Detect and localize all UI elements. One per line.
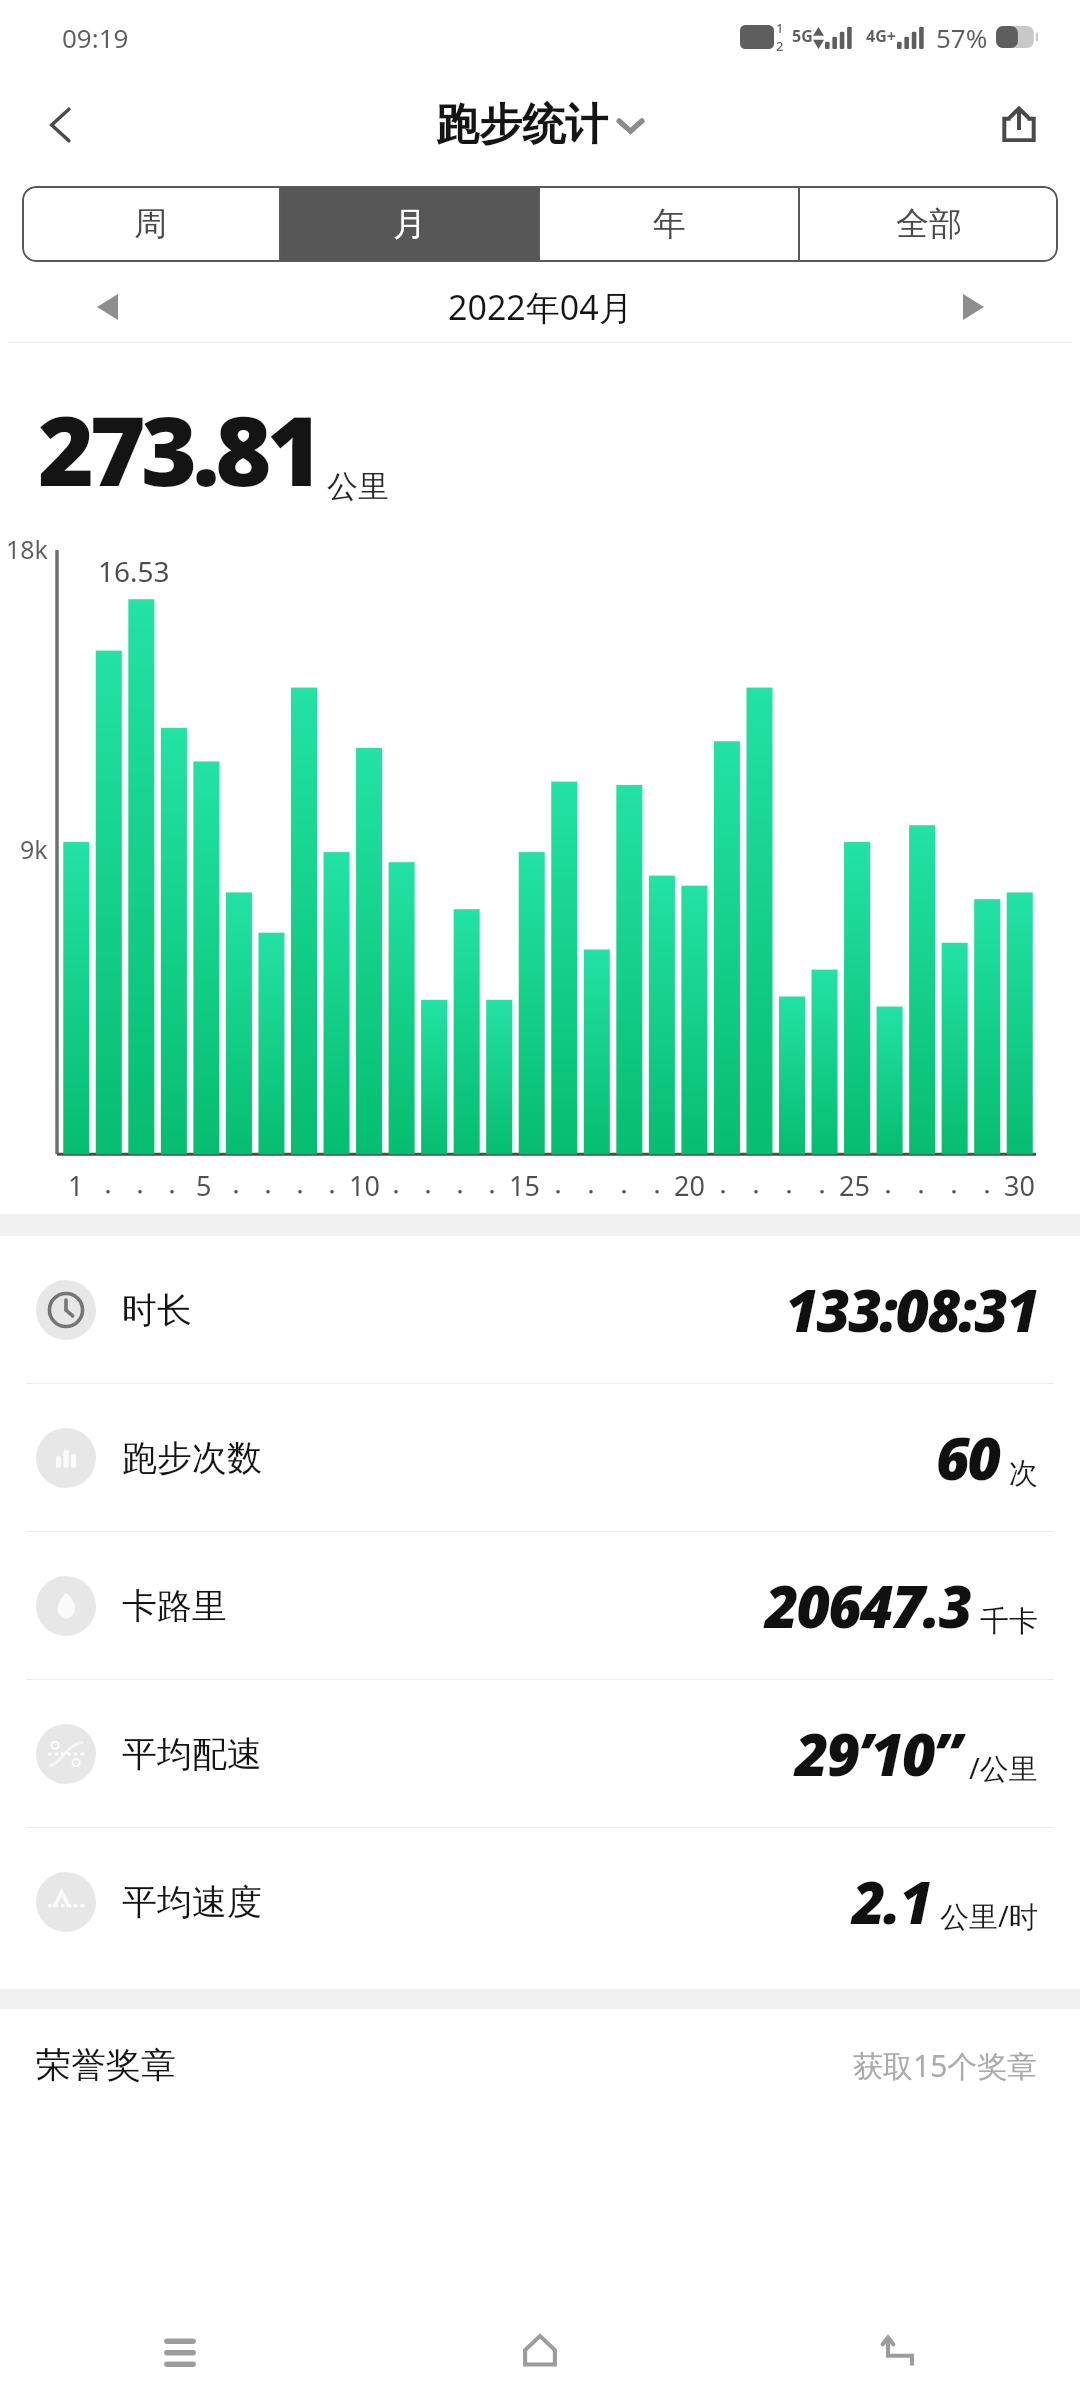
staticText: 时长 — [122, 1288, 192, 1332]
button[interactable]: 年 — [540, 186, 798, 262]
staticText: 年 — [653, 203, 686, 245]
staticText: 273.81 — [38, 383, 319, 514]
button[interactable]: 跑步次数 — [0, 1384, 1080, 1531]
staticText: /公里 — [969, 1748, 1038, 1788]
staticText: 获取15个奖章 — [853, 2045, 1038, 2086]
button[interactable]: 全部 — [800, 186, 1058, 262]
button[interactable]: Previous — [78, 278, 136, 336]
button[interactable]: 时长 — [0, 1236, 1080, 1383]
button[interactable]: 月 — [281, 186, 538, 262]
button[interactable]: 跑步统计 — [436, 98, 644, 152]
staticText: 周 — [134, 203, 167, 245]
staticText: 千卡 — [980, 1603, 1038, 1640]
button[interactable]: 卡路里 — [0, 1532, 1080, 1679]
staticText: 57% — [936, 20, 988, 55]
staticText: 20 — [674, 1167, 705, 1204]
staticText: 卡路里 — [122, 1584, 227, 1628]
staticText: 月 — [393, 203, 426, 245]
button[interactable]: 荣誉奖章 — [0, 2009, 1080, 2121]
button[interactable]: Recents — [0, 2302, 360, 2400]
button[interactable]: Back — [720, 2302, 1080, 2400]
staticText: 15 — [509, 1167, 540, 1204]
staticText: 18k — [6, 532, 48, 566]
staticText: 1 — [68, 1167, 84, 1204]
staticText: 20647.3 — [765, 1566, 971, 1645]
staticText: 9k — [20, 832, 48, 866]
button[interactable]: Next — [944, 278, 1002, 336]
staticText: 133:08:31 — [785, 1270, 1038, 1349]
staticText: 平均配速 — [122, 1732, 262, 1776]
staticText: 5 — [196, 1167, 212, 1204]
staticText: 30 — [1004, 1167, 1035, 1204]
staticText: 2.1 — [852, 1862, 931, 1941]
staticText: 荣誉奖章 — [36, 2043, 176, 2087]
staticText: 公里 — [327, 467, 389, 506]
staticText: 2 — [776, 37, 784, 55]
staticText: 跑步统计 — [436, 98, 608, 152]
staticText: 4G+ — [866, 25, 896, 47]
button[interactable]: Home — [360, 2302, 720, 2400]
button[interactable]: Share — [978, 84, 1060, 166]
staticText: 10 — [349, 1167, 380, 1204]
staticText: 公里/时 — [940, 1896, 1038, 1936]
button[interactable]: 平均配速 — [0, 1680, 1080, 1827]
staticText: 全部 — [896, 203, 962, 245]
staticText: 次 — [1009, 1455, 1038, 1492]
staticText: 平均速度 — [122, 1880, 262, 1924]
staticText: 5G — [792, 25, 813, 47]
staticText: 2022年04月 — [448, 284, 633, 330]
staticText: 25 — [839, 1167, 870, 1204]
staticText: 09:19 — [62, 20, 129, 55]
staticText: 1 — [776, 19, 784, 37]
button[interactable]: 平均速度 — [0, 1828, 1080, 1975]
staticText: 60 — [936, 1418, 1000, 1497]
staticText: 跑步次数 — [122, 1436, 262, 1480]
button[interactable]: 周 — [22, 186, 279, 262]
button[interactable]: Back — [20, 84, 102, 166]
staticText: 29’10” — [795, 1714, 960, 1793]
staticText: 16.53 — [98, 552, 170, 590]
